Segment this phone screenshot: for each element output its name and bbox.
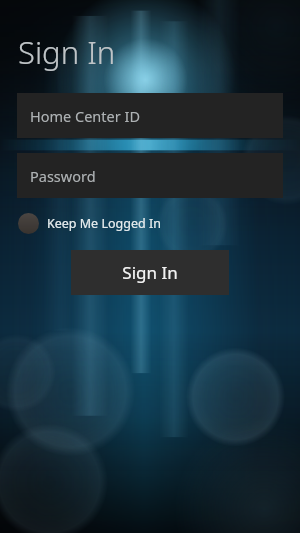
button[interactable]: Home Center ID input field	[17, 93, 283, 138]
staticText: Home Center ID	[30, 106, 140, 126]
staticText: Sign In	[18, 31, 116, 73]
staticText: Password	[30, 166, 96, 186]
staticText: Sign In	[122, 261, 178, 284]
staticText: Keep Me Logged In	[47, 215, 161, 232]
button[interactable]: Password input field	[17, 153, 283, 198]
button[interactable]: Keep Me Logged In	[16, 210, 163, 237]
button[interactable]: Sign In	[71, 250, 229, 295]
